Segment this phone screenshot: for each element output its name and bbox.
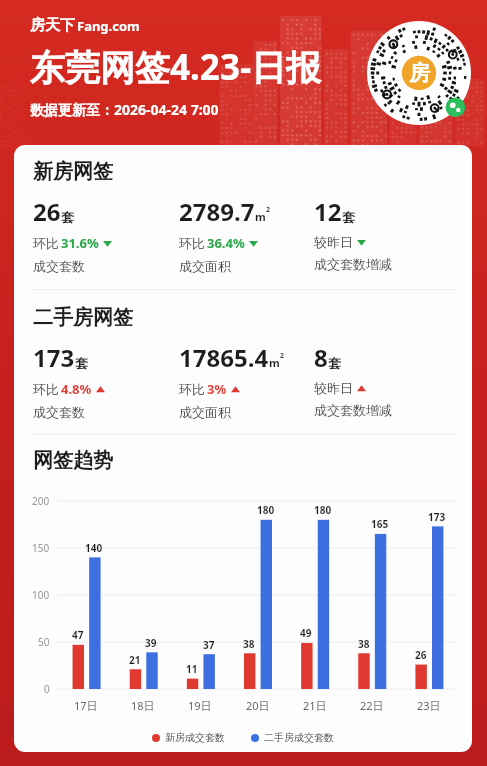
- staticText: 100: [32, 588, 50, 602]
- staticText: 12: [314, 195, 342, 228]
- staticText: m: [269, 355, 280, 370]
- staticText: 180: [314, 503, 332, 517]
- staticText: 50: [38, 635, 50, 649]
- staticText: 49: [300, 626, 312, 640]
- staticText: 新房成交套数: [165, 731, 225, 744]
- staticText: 38: [243, 637, 255, 651]
- staticText: 套: [328, 355, 341, 371]
- staticText: 39: [145, 636, 157, 650]
- staticText: 140: [85, 541, 103, 555]
- staticText: 0: [44, 682, 50, 696]
- button[interactable]: 173: [33, 341, 179, 420]
- staticText: 成交面积: [179, 258, 231, 274]
- staticText: 4.8%: [61, 380, 92, 398]
- staticText: 17日: [74, 698, 98, 713]
- staticText: 38: [358, 637, 370, 651]
- staticText: 二手房成交套数: [264, 731, 334, 744]
- staticText: Fang.com: [77, 17, 140, 35]
- staticText: 47: [72, 628, 84, 642]
- button[interactable]: 二手房成交套数: [251, 731, 334, 744]
- staticText: 36.4%: [207, 234, 245, 252]
- staticText: 19日: [188, 698, 212, 713]
- staticText: 23日: [417, 698, 441, 713]
- staticText: 2: [266, 205, 271, 215]
- button[interactable]: 2789.7: [179, 195, 314, 274]
- staticText: 环比: [179, 235, 205, 251]
- button[interactable]: 扫描二维码打开小程序: [367, 21, 471, 125]
- staticText: 新房网签: [33, 159, 113, 184]
- staticText: 套: [61, 209, 74, 225]
- staticText: 21日: [303, 698, 327, 713]
- staticText: 26: [33, 195, 61, 228]
- staticText: 成交套数增减: [314, 402, 392, 418]
- staticText: 17865.4: [179, 341, 269, 374]
- staticText: m: [255, 209, 266, 224]
- staticText: 37: [203, 638, 215, 652]
- button[interactable]: 26: [33, 195, 179, 274]
- button[interactable]: 12: [314, 195, 472, 272]
- staticText: 18日: [131, 698, 155, 713]
- button[interactable]: 17865.4: [179, 341, 314, 420]
- staticText: 成交套数: [33, 404, 85, 420]
- staticText: 21: [129, 653, 141, 667]
- staticText: 环比: [33, 235, 59, 251]
- staticText: 房天下: [30, 16, 75, 35]
- staticText: 8: [314, 341, 328, 374]
- staticText: 成交套数: [33, 258, 85, 274]
- staticText: 173: [33, 341, 75, 374]
- staticText: 二手房网签: [33, 305, 133, 330]
- staticText: 173: [428, 510, 446, 524]
- staticText: 26: [415, 648, 427, 662]
- staticText: 环比: [33, 381, 59, 397]
- button[interactable]: 8: [314, 341, 472, 418]
- staticText: 200: [32, 494, 50, 508]
- staticText: 套: [342, 209, 355, 225]
- staticText: 成交套数增减: [314, 256, 392, 272]
- button[interactable]: 新房成交套数: [152, 731, 225, 744]
- staticText: 数据更新至：2026-04-24 7:00: [30, 100, 219, 119]
- staticText: 31.6%: [61, 234, 99, 252]
- staticText: 网签趋势: [33, 448, 113, 473]
- staticText: 较昨日: [314, 380, 353, 396]
- staticText: 165: [371, 517, 389, 531]
- staticText: 22日: [360, 698, 384, 713]
- staticText: 180: [257, 503, 275, 517]
- staticText: 房: [409, 60, 430, 86]
- staticText: 环比: [179, 381, 205, 397]
- staticText: 11: [186, 662, 198, 676]
- staticText: 套: [75, 355, 88, 371]
- staticText: 20日: [246, 698, 270, 713]
- staticText: 3%: [207, 380, 227, 398]
- staticText: 2789.7: [179, 195, 255, 228]
- staticText: 150: [32, 541, 50, 555]
- staticText: 成交面积: [179, 404, 231, 420]
- staticText: 较昨日: [314, 234, 353, 250]
- staticText: 东莞网签4.23-日报: [30, 43, 322, 91]
- staticText: 2: [280, 351, 285, 361]
